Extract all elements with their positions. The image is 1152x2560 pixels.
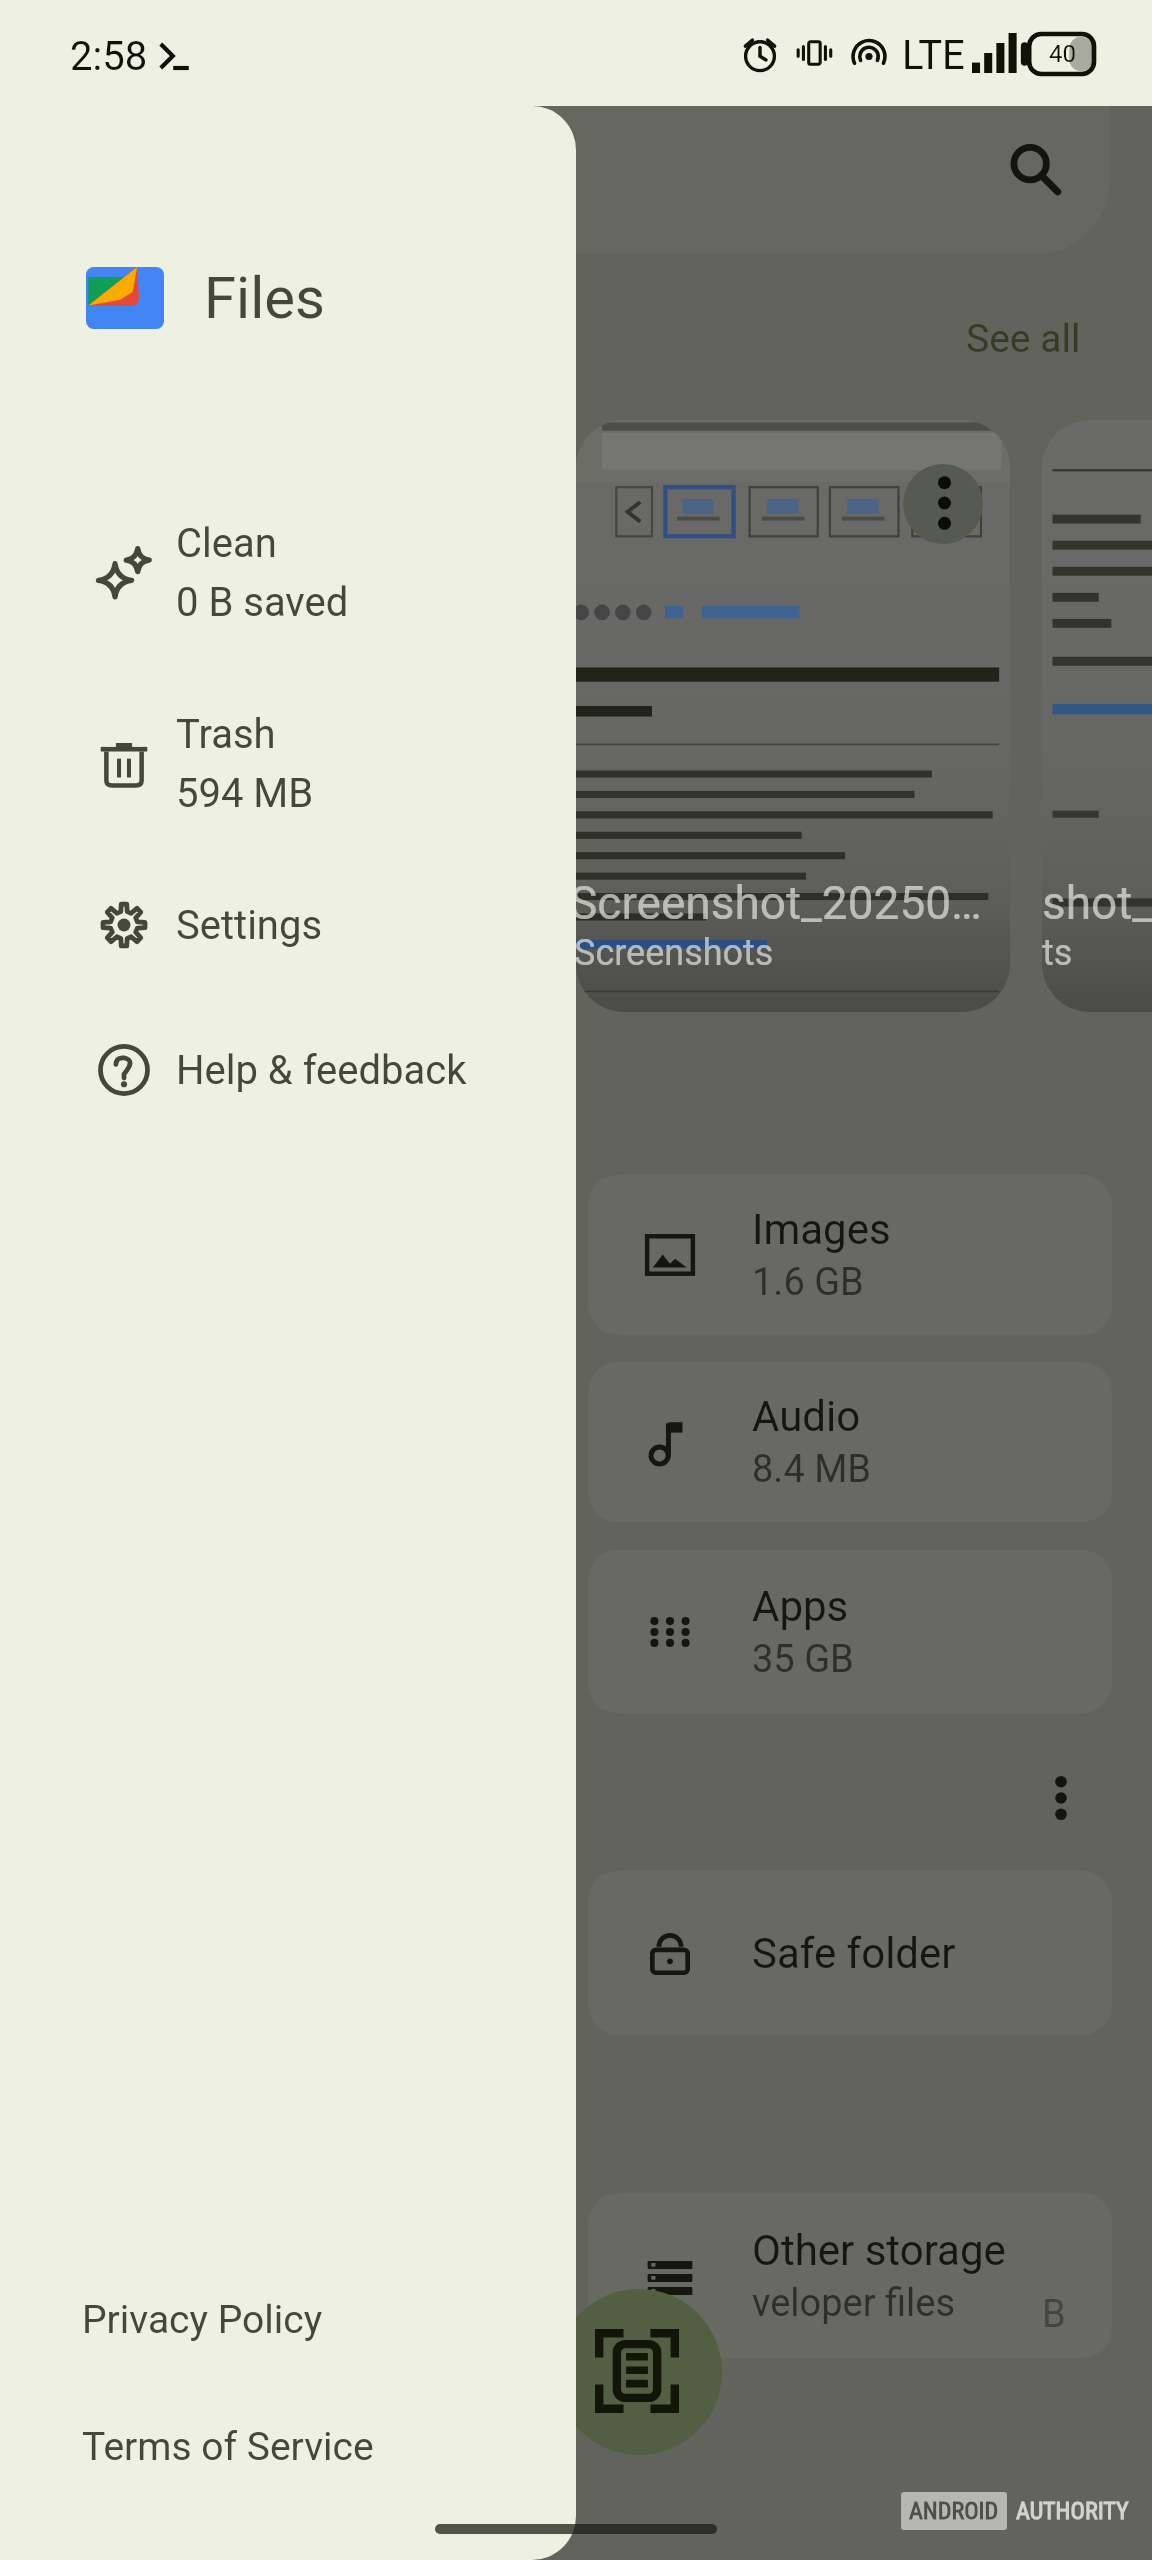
staticText: Files	[204, 264, 325, 332]
button[interactable]: More options	[903, 464, 983, 544]
staticText: Apps	[752, 1582, 849, 1631]
staticText: Trash	[176, 711, 276, 758]
button[interactable]: Images	[588, 1175, 1112, 1335]
staticText: Help & feedback	[176, 1047, 467, 1094]
staticText: See all	[966, 316, 1081, 362]
staticText: 0 B saved	[176, 579, 349, 626]
button[interactable]: Clean	[0, 498, 560, 648]
button[interactable]: Files	[86, 264, 325, 332]
staticText: Terms of Service	[82, 2424, 374, 2470]
button[interactable]: Trash	[0, 689, 560, 839]
staticText: veloper files	[752, 2281, 956, 2326]
button[interactable]: Terms of Service	[50, 2406, 510, 2488]
button[interactable]: Scan document	[556, 2289, 722, 2455]
staticText: 40	[1049, 40, 1076, 68]
staticText: 594 MB	[176, 770, 314, 817]
staticText: Settings	[176, 902, 323, 949]
staticText: LTE	[902, 32, 965, 79]
staticText: Images	[752, 1205, 891, 1254]
staticText: 8.4 MB	[752, 1447, 872, 1492]
button[interactable]: Safe folder	[588, 1871, 1112, 2035]
button[interactable]: Apps	[588, 1550, 1112, 1713]
button[interactable]: More options	[1007, 1744, 1115, 1852]
staticText: Other storage	[752, 2226, 1006, 2275]
button[interactable]	[576, 420, 1010, 1012]
staticText: AUTHORITY	[1016, 2497, 1129, 2525]
staticText: ANDROID	[909, 2497, 999, 2525]
staticText: B	[1042, 2292, 1066, 2337]
staticText: Audio	[752, 1392, 861, 1441]
staticText: Clean	[176, 520, 277, 567]
button[interactable]: Audio	[588, 1362, 1112, 1522]
staticText: Safe folder	[752, 1929, 956, 1978]
button[interactable]: Search	[978, 116, 1086, 224]
staticText: ts	[1042, 932, 1073, 974]
button[interactable]: Search	[42, 106, 1110, 254]
staticText: shot_2	[1042, 876, 1152, 930]
staticText: Privacy Policy	[82, 2297, 323, 2343]
button[interactable]: Help & feedback	[0, 1022, 560, 1118]
staticText: Screenshot_20250…	[570, 876, 982, 930]
staticText: 2:58	[70, 33, 148, 80]
button[interactable]: Privacy Policy	[50, 2279, 510, 2361]
button[interactable]: See all	[936, 286, 1111, 392]
staticText: Screenshots	[574, 932, 774, 974]
staticText: 1.6 GB	[752, 1260, 864, 1305]
staticText: 35 GB	[752, 1637, 854, 1682]
button[interactable]: Settings	[0, 877, 560, 973]
button[interactable]: Other storage	[588, 2193, 1112, 2358]
